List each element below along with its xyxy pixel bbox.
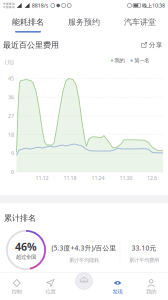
button[interactable]: 我的 bbox=[134, 273, 168, 300]
button[interactable]: 服务预约 bbox=[56, 11, 112, 35]
staticText: 中国移动 bbox=[3, 5, 15, 9]
staticText: 46% bbox=[15, 240, 37, 254]
staticText: 9 bbox=[11, 150, 14, 157]
staticText: 控制 bbox=[12, 288, 22, 295]
staticText: 我的 bbox=[146, 288, 156, 295]
staticText: 位置 bbox=[45, 288, 55, 295]
staticText: 能耗排名 bbox=[12, 17, 44, 27]
staticText: 27 bbox=[8, 112, 14, 119]
staticText: 我的 bbox=[114, 57, 124, 64]
staticText: 最近百公里费用 bbox=[3, 40, 59, 50]
staticText: 晚上10:38 bbox=[142, 2, 165, 9]
staticText: 12.6 bbox=[147, 174, 157, 182]
button[interactable]: My car bbox=[75, 272, 93, 290]
staticText: 33.10元 bbox=[131, 243, 156, 252]
staticText: (元) bbox=[5, 58, 14, 66]
staticText: 累计排名 bbox=[4, 213, 36, 223]
staticText: 36 bbox=[8, 94, 14, 101]
staticText: 45 bbox=[8, 75, 14, 82]
staticText: 8818/s bbox=[32, 2, 49, 9]
staticText: 0 bbox=[11, 168, 14, 176]
staticText: (5.3度+4.3升)/百公里 bbox=[51, 243, 116, 252]
button[interactable]: 位置 bbox=[34, 273, 67, 300]
staticText: 服务预约 bbox=[68, 17, 100, 27]
staticText: 汽车讲堂 bbox=[124, 17, 156, 27]
staticText: 11.24 bbox=[91, 174, 104, 182]
staticText: 分享 bbox=[149, 41, 163, 49]
button[interactable]: 分享 bbox=[139, 39, 165, 51]
button[interactable]: 发现 bbox=[101, 273, 134, 300]
button[interactable]: 控制 bbox=[0, 273, 34, 300]
staticText: 11.18 bbox=[63, 174, 76, 182]
staticText: 11.12 bbox=[35, 174, 48, 182]
button[interactable]: 汽车讲堂 bbox=[112, 11, 168, 35]
staticText: 累计平均能耗 bbox=[69, 257, 99, 263]
staticText: 11.30 bbox=[119, 174, 132, 182]
staticText: 第一名 bbox=[134, 57, 149, 64]
staticText: 中国移动 bbox=[3, 2, 15, 5]
staticText: 18 bbox=[8, 131, 14, 138]
staticText: 超过全国 bbox=[16, 254, 36, 260]
button[interactable]: 能耗排名 bbox=[0, 11, 56, 35]
staticText: 发现 bbox=[113, 288, 123, 295]
button[interactable] bbox=[67, 273, 101, 300]
staticText: 累计平均费用 bbox=[129, 257, 159, 263]
